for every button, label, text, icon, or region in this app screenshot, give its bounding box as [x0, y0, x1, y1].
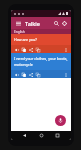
button[interactable]: I need your clothes, your boots, and you…	[11, 53, 71, 78]
button[interactable]: Search	[52, 19, 60, 27]
button[interactable]: How are you?	[11, 34, 71, 53]
button[interactable]: More options	[62, 71, 69, 78]
button[interactable]: Back	[21, 132, 28, 139]
button[interactable]: Home	[38, 132, 45, 139]
button[interactable]: Share	[27, 71, 34, 78]
button[interactable]: Play	[13, 71, 20, 78]
button[interactable]: Settings	[60, 19, 68, 27]
staticText: Talkie	[25, 20, 52, 27]
button[interactable]: Open navigation drawer	[14, 19, 22, 27]
button[interactable]: Translate	[34, 46, 41, 53]
staticText: motorcycle	[14, 62, 33, 67]
button[interactable]: Translate	[34, 71, 41, 78]
button[interactable]: Play	[13, 46, 20, 53]
button[interactable]: Recent apps	[54, 132, 61, 139]
staticText: I need your clothes, your boots, and you…	[14, 56, 68, 61]
button[interactable]: English	[11, 29, 71, 34]
button[interactable]: Copy	[20, 46, 27, 53]
button[interactable]: Share	[27, 46, 34, 53]
staticText: How are you?	[14, 37, 37, 42]
button[interactable]: More options	[62, 46, 69, 53]
button[interactable]: Speak	[55, 115, 66, 126]
button[interactable]: Copy	[20, 71, 27, 78]
staticText: English	[14, 30, 25, 34]
